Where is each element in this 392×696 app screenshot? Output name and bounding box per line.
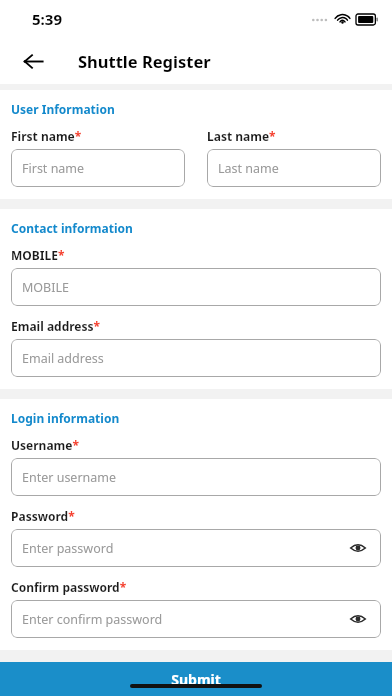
staticText: Confirm password*: [11, 579, 127, 595]
button[interactable]: Email address: [11, 339, 381, 377]
staticText: Contact information: [11, 220, 133, 236]
staticText: MOBILE: [22, 279, 69, 296]
staticText: Email address: [22, 350, 104, 367]
staticText: User Information: [11, 101, 115, 117]
staticText: Email address*: [11, 318, 101, 334]
staticText: Login information: [11, 410, 120, 426]
button[interactable]: Last name: [207, 149, 381, 187]
button[interactable]: MOBILE: [11, 268, 381, 306]
staticText: First name*: [11, 128, 82, 144]
button[interactable]: Show password: [346, 536, 370, 560]
button[interactable]: Enter confirm password: [11, 600, 381, 638]
button[interactable]: Enter username: [11, 458, 381, 496]
staticText: Last name: [218, 160, 279, 177]
staticText: Enter username: [22, 469, 117, 486]
staticText: Submit: [171, 670, 221, 689]
button[interactable]: Show password: [346, 607, 370, 631]
staticText: First name: [22, 160, 85, 177]
staticText: Enter confirm password: [22, 611, 163, 628]
staticText: Password*: [11, 508, 75, 524]
staticText: 5:39: [32, 9, 62, 29]
button[interactable]: First name: [11, 149, 185, 187]
button[interactable]: Submit: [0, 662, 392, 696]
staticText: MOBILE*: [11, 247, 65, 263]
staticText: Shuttle Register: [78, 50, 211, 72]
staticText: Enter password: [22, 540, 114, 557]
staticText: Username*: [11, 437, 79, 453]
staticText: Last name*: [207, 128, 276, 144]
button[interactable]: Enter password: [11, 529, 381, 567]
button[interactable]: Back: [18, 46, 48, 76]
